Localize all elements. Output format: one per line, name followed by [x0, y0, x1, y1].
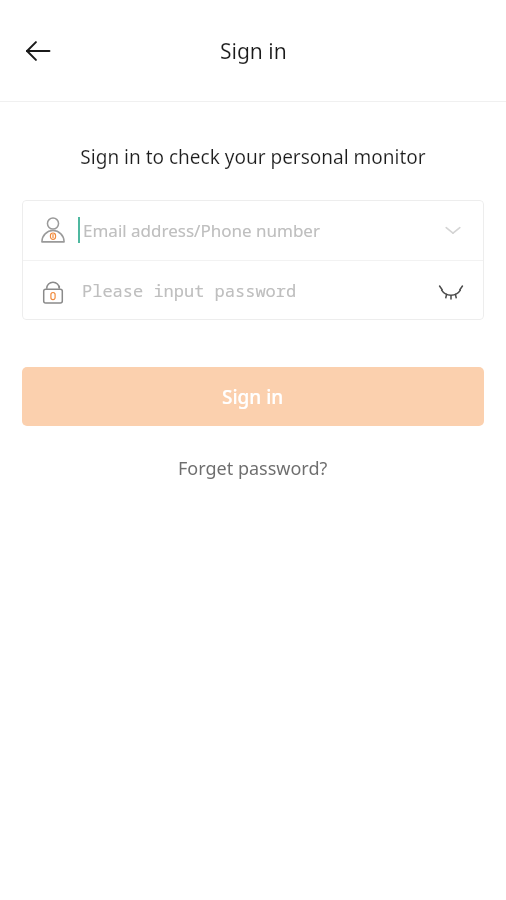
staticText: Email address/Phone number [83, 219, 438, 242]
button[interactable]: Please input password [22, 261, 484, 320]
staticText: Sign in [222, 384, 284, 410]
staticText: Please input password [82, 279, 434, 302]
staticText: Forget password? [178, 456, 328, 481]
button[interactable]: Sign in [22, 367, 484, 426]
button[interactable]: Show account history [438, 215, 468, 245]
button[interactable]: Show password [434, 274, 468, 308]
staticText: Sign in [220, 37, 287, 66]
button[interactable]: Email address/Phone number [22, 200, 484, 260]
button[interactable]: Back [14, 27, 62, 75]
button[interactable]: Forget password? [164, 450, 342, 487]
staticText: Sign in to check your personal monitor [0, 144, 506, 170]
